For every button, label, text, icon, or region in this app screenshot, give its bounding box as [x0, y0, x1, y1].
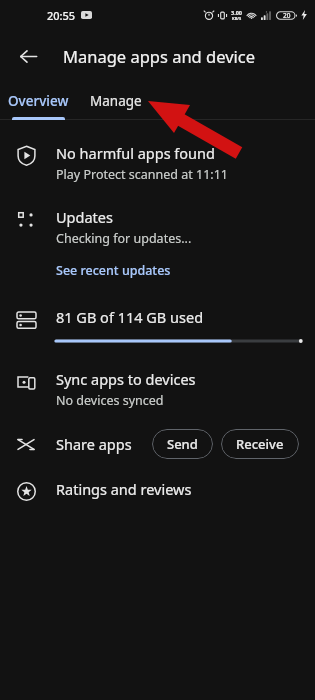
staticText: See recent updates	[56, 262, 171, 279]
staticText: No devices synced	[56, 392, 164, 409]
button[interactable]: Ratings and reviews	[0, 467, 315, 515]
staticText: No harmful apps found	[56, 143, 215, 163]
staticText: 3.00	[231, 9, 242, 16]
staticText: 81 GB of 114 GB used	[56, 307, 204, 327]
staticText: Manage apps and device	[63, 45, 256, 67]
button[interactable]: Send	[152, 429, 213, 459]
button[interactable]: Manage	[77, 82, 154, 120]
button[interactable]: Receive	[221, 429, 299, 459]
staticText: Share apps	[56, 434, 132, 454]
staticText: 20:55	[47, 8, 76, 23]
staticText: 20	[283, 11, 291, 20]
staticText: Updates	[56, 207, 113, 227]
button[interactable]: Overview	[0, 82, 77, 120]
button[interactable]: Sync apps to devices	[0, 357, 315, 421]
button[interactable]: 81 GB of 114 GB used	[0, 295, 315, 357]
staticText: Manage	[90, 92, 142, 110]
button[interactable]: Updates	[0, 195, 315, 295]
staticText: Overview	[8, 92, 69, 110]
button[interactable]: See recent updates	[56, 262, 171, 279]
button[interactable]: Back	[8, 36, 48, 76]
staticText: Checking for updates...	[56, 230, 192, 247]
staticText: Receive	[236, 435, 284, 453]
staticText: KB/S	[232, 16, 242, 21]
staticText: Play Protect scanned at 11:11	[56, 166, 228, 183]
button[interactable]: No harmful apps found	[0, 131, 315, 195]
staticText: Sync apps to devices	[56, 369, 196, 389]
staticText: Send	[167, 435, 198, 453]
staticText: Ratings and reviews	[56, 479, 192, 499]
